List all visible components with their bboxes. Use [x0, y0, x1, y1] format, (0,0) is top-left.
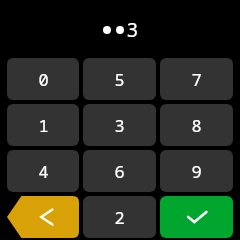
staticText: 7 — [191, 68, 202, 91]
staticText: 2 — [114, 206, 125, 229]
staticText: 9 — [191, 160, 202, 183]
button[interactable]: 9 — [160, 150, 233, 192]
button[interactable]: 4 — [7, 150, 79, 192]
staticText: 4 — [38, 160, 49, 183]
button[interactable]: 2 — [83, 196, 156, 238]
button[interactable]: Back — [7, 196, 79, 238]
staticText: 8 — [191, 114, 202, 137]
button[interactable]: 8 — [160, 104, 233, 146]
button[interactable]: 3 — [83, 104, 156, 146]
staticText: 3 — [114, 114, 125, 137]
staticText: 0 — [38, 68, 49, 91]
staticText: 3 — [127, 17, 138, 43]
button[interactable]: 6 — [83, 150, 156, 192]
button[interactable]: 0 — [7, 58, 79, 100]
button[interactable]: 1 — [7, 104, 79, 146]
button[interactable]: Confirm — [160, 196, 233, 238]
button[interactable]: 7 — [160, 58, 233, 100]
staticText: 1 — [38, 114, 49, 137]
staticText: 5 — [114, 68, 125, 91]
staticText: 6 — [114, 160, 125, 183]
button[interactable]: 5 — [83, 58, 156, 100]
